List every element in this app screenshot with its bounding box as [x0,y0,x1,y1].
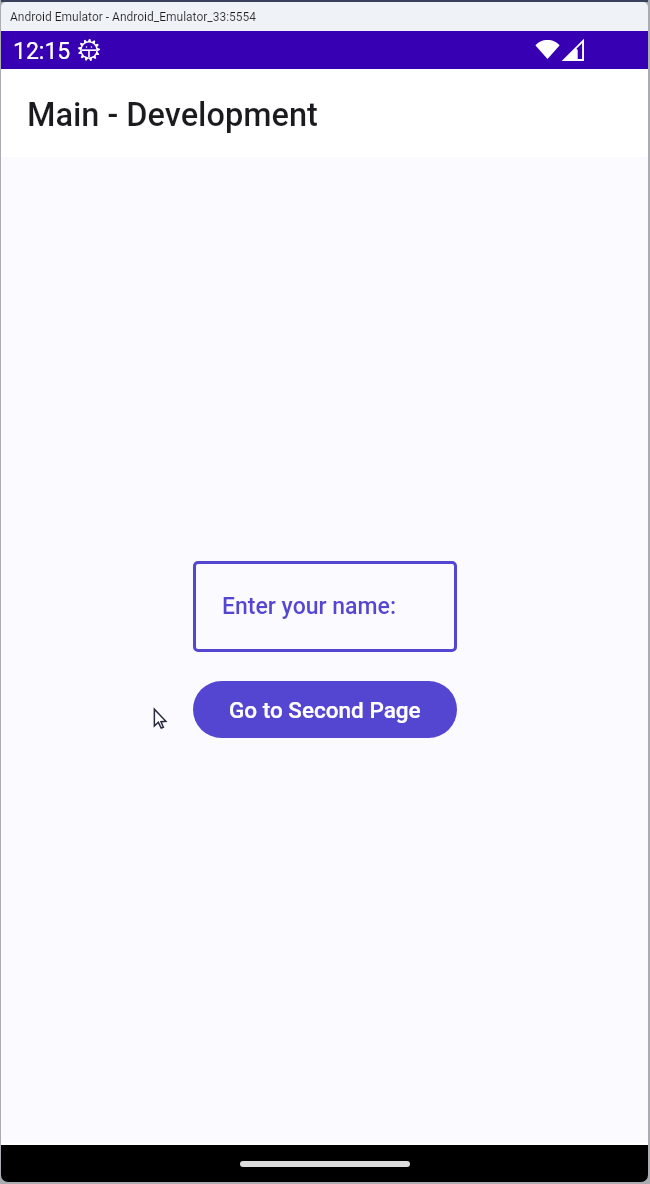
staticText: Enter your name: [222,593,397,620]
button[interactable]: Enter your name: [193,561,457,652]
button[interactable]: Go to Second Page [193,681,457,738]
other: Wi-Fi [535,38,560,59]
staticText: Android Emulator - Android_Emulator_33:5… [10,10,257,24]
other: Mobile signal [563,40,584,61]
other: Developer options [78,39,100,61]
staticText: Go to Second Page [229,697,421,723]
staticText: Main - Development [27,96,318,134]
staticText: 12:15 [13,38,71,65]
